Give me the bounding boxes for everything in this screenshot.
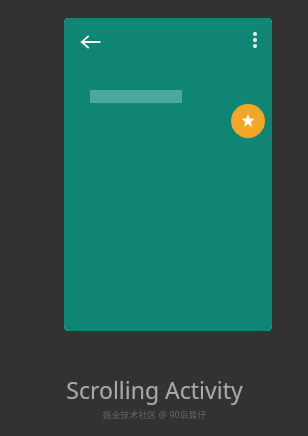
button[interactable]: Navigate up (73, 25, 107, 59)
staticText: Scrolling Activity (66, 374, 243, 405)
button[interactable]: More options (240, 25, 270, 55)
staticText: 掘金技术社区 @ 90后晨仔 (102, 408, 207, 420)
button[interactable]: Favorite (231, 104, 265, 138)
